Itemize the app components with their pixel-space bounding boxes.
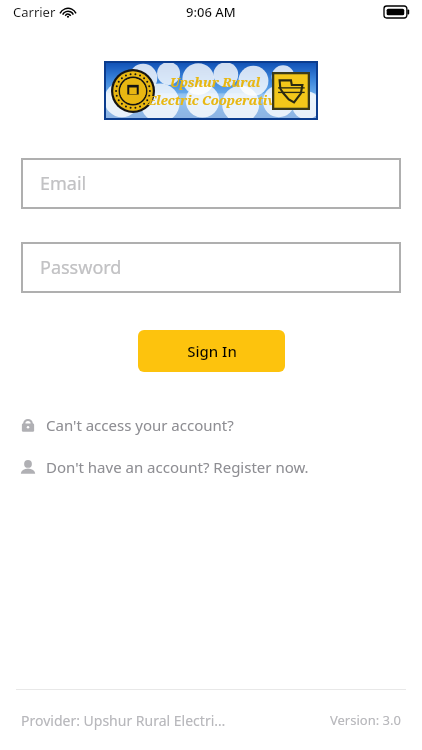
staticText: Electric Cooperative <box>148 91 283 109</box>
staticText: Sign In <box>187 341 237 361</box>
button[interactable]: Register now <box>0 452 422 482</box>
button[interactable]: Email <box>21 158 401 209</box>
button[interactable]: Can't access your account <box>0 410 422 440</box>
other: Register now <box>19 458 37 476</box>
staticText: Password <box>40 255 122 280</box>
staticText: Carrier <box>13 3 56 21</box>
staticText: Version: 3.0 <box>330 711 401 729</box>
staticText: 9:06 AM <box>186 3 236 21</box>
staticText: Provider: Upshur Rural Electri… <box>21 711 226 730</box>
staticText: Can't access your account? <box>46 415 234 435</box>
staticText: Don't have an account? Register now. <box>46 457 309 477</box>
button[interactable]: Password <box>21 242 401 293</box>
button[interactable]: Sign In <box>138 330 285 372</box>
staticText: Upshur Rural <box>170 73 261 91</box>
staticText: Email <box>40 171 87 196</box>
other: Can't access your account <box>19 416 37 434</box>
